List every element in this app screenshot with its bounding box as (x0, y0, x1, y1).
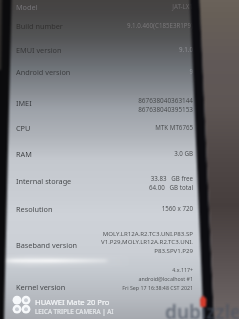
other: Leica camera (13, 296, 32, 316)
staticText: IMEI (16, 98, 32, 108)
staticText: CPU (16, 123, 31, 133)
staticText: RAM (16, 149, 32, 159)
staticText: HUAWEI Mate 20 Pro (35, 297, 110, 307)
button[interactable] (13, 62, 193, 80)
button[interactable]: Leica camera (13, 296, 114, 316)
button[interactable] (13, 277, 193, 295)
button[interactable] (13, 118, 193, 136)
staticText: 9.1.0.460(C185E3R1P9) (80, 21, 193, 29)
button[interactable] (13, 0, 193, 15)
staticText: dubizzle (165, 299, 239, 319)
staticText: 867638040363144 867638040395153 (80, 96, 193, 114)
staticText: JAT-LX1 (80, 2, 193, 10)
staticText: Baseband version (16, 240, 78, 250)
staticText: Model (16, 2, 38, 12)
staticText: EMUI version (16, 45, 62, 55)
staticText: Internal storage (16, 176, 72, 186)
staticText: 9 (80, 67, 193, 75)
staticText: 3.0 GB (80, 149, 193, 157)
staticText: MTK MT6765 (80, 123, 193, 131)
staticText: Android version (16, 67, 71, 77)
staticText: Resolution (16, 204, 53, 214)
button[interactable] (13, 40, 193, 58)
staticText: 1560 x 720 (80, 204, 193, 212)
staticText: 4.x.117+ android@localhost #1 Fri Sep 17… (105, 266, 193, 292)
staticText: 9.1.0 (80, 45, 193, 53)
button[interactable] (13, 93, 193, 111)
button[interactable] (13, 199, 193, 217)
staticText: 33.83 GB free 64.00 GB total (80, 174, 193, 192)
staticText: Kernel version (16, 282, 66, 292)
staticText: MOLY.LR12A.R2.TC3.UNI.P83.SP V1.P29,MOLY… (70, 229, 193, 255)
staticText: LEICA TRIPLE CAMERA | AI (35, 307, 114, 316)
button[interactable] (13, 16, 193, 34)
button[interactable] (13, 144, 193, 162)
staticText: Build number (16, 21, 63, 31)
button[interactable] (13, 171, 193, 189)
button[interactable] (13, 235, 193, 253)
